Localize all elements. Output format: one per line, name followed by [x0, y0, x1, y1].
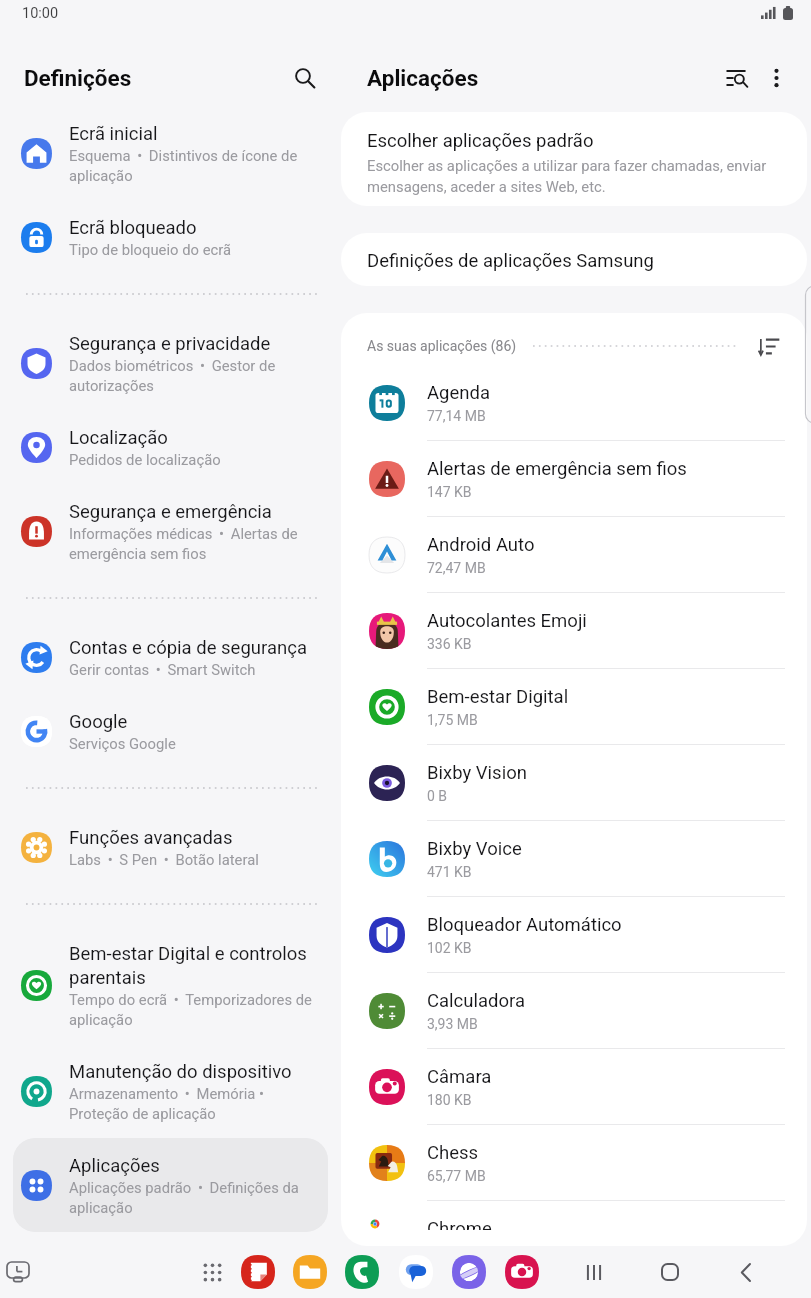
- button[interactable]: Funções avançadas: [13, 810, 328, 884]
- staticText: 10:00: [22, 5, 59, 22]
- staticText: Aplicações: [367, 65, 479, 91]
- button[interactable]: Messages: [390, 1246, 442, 1298]
- staticText: Labs • S Pen • Botão lateral: [69, 851, 259, 868]
- staticText: 102 KB: [427, 940, 472, 956]
- button[interactable]: Sort: [753, 331, 785, 361]
- staticText: Aplicações padrão • Definições da aplica…: [69, 1179, 299, 1216]
- button[interactable]: Segurança e emergência: [13, 484, 328, 578]
- button[interactable]: Contas e cópia de segurança: [13, 620, 328, 694]
- staticText: 77,14 MB: [427, 408, 486, 424]
- button[interactable]: DeX mode: [3, 1246, 33, 1298]
- button[interactable]: Manutenção do dispositivo: [13, 1044, 328, 1138]
- staticText: Bixby Voice: [427, 838, 522, 860]
- button[interactable]: Bem-estar Digital e controlos parentais: [13, 926, 328, 1044]
- button[interactable]: Alertas de emergência sem fios: [341, 441, 807, 516]
- staticText: Pedidos de localização: [69, 451, 221, 468]
- staticText: Gerir contas • Smart Switch: [69, 661, 256, 678]
- staticText: Escolher as aplicações a utilizar para f…: [367, 157, 767, 196]
- button[interactable]: Phone: [336, 1246, 388, 1298]
- staticText: Bem-estar Digital e controlos parentais: [69, 943, 307, 989]
- staticText: Alertas de emergência sem fios: [427, 458, 687, 480]
- staticText: Serviços Google: [69, 735, 176, 752]
- staticText: Localização: [69, 427, 168, 449]
- staticText: 0 B: [427, 788, 448, 804]
- staticText: Definições: [24, 65, 132, 91]
- staticText: Definições de aplicações Samsung: [367, 250, 654, 272]
- staticText: Bem-estar Digital: [427, 686, 569, 708]
- button[interactable]: Ecrã bloqueado: [13, 200, 328, 274]
- staticText: Ecrã bloqueado: [69, 217, 197, 239]
- staticText: Autocolantes Emoji: [427, 610, 587, 632]
- staticText: Dados biométricos • Gestor de autorizaçõ…: [69, 357, 276, 394]
- button[interactable]: Escolher aplicações padrão: [341, 112, 807, 206]
- staticText: Agenda: [427, 382, 490, 404]
- staticText: Bixby Vision: [427, 762, 527, 784]
- button[interactable]: Ecrã inicial: [13, 106, 328, 200]
- staticText: Funções avançadas: [69, 827, 233, 849]
- button[interactable]: Search apps: [715, 56, 759, 100]
- button[interactable]: Bem-estar Digital: [341, 669, 807, 744]
- staticText: Câmara: [427, 1066, 492, 1088]
- staticText: 336 KB: [427, 636, 472, 652]
- button[interactable]: Android Auto: [341, 517, 807, 592]
- staticText: Chess: [427, 1142, 479, 1164]
- staticText: Aplicações: [69, 1155, 160, 1177]
- button[interactable]: More options: [754, 56, 798, 100]
- staticText: Google: [69, 711, 128, 733]
- staticText: 471 KB: [427, 864, 472, 880]
- button[interactable]: My Files: [284, 1246, 336, 1298]
- staticText: Tempo do ecrã • Temporizadores de aplica…: [69, 991, 312, 1028]
- staticText: Segurança e privacidade: [69, 333, 271, 355]
- button[interactable]: Localização: [13, 410, 328, 484]
- button[interactable]: Autocolantes Emoji: [341, 593, 807, 668]
- staticText: Escolher aplicações padrão: [367, 130, 594, 152]
- button[interactable]: Internet: [443, 1246, 495, 1298]
- staticText: Chrome: [427, 1218, 492, 1230]
- staticText: Contas e cópia de segurança: [69, 637, 307, 659]
- staticText: Segurança e emergência: [69, 501, 272, 523]
- staticText: Bloqueador Automático: [427, 914, 622, 936]
- button[interactable]: Aplicações: [13, 1138, 328, 1232]
- button[interactable]: Definições de aplicações Samsung: [341, 233, 807, 286]
- button[interactable]: Agenda: [341, 365, 807, 440]
- staticText: Manutenção do dispositivo: [69, 1061, 292, 1083]
- staticText: Calculadora: [427, 990, 526, 1012]
- button[interactable]: Samsung Notes: [232, 1246, 284, 1298]
- button[interactable]: Calculadora: [341, 973, 807, 1048]
- button[interactable]: Bixby Voice: [341, 821, 807, 896]
- staticText: 65,77 MB: [427, 1168, 486, 1184]
- staticText: Tipo de bloqueio do ecrã: [69, 241, 231, 258]
- staticText: Android Auto: [427, 534, 535, 556]
- staticText: Esquema • Distintivos de ícone de aplica…: [69, 147, 298, 184]
- staticText: 147 KB: [427, 484, 472, 500]
- button[interactable]: Search: [283, 56, 327, 100]
- button[interactable]: All apps: [190, 1246, 234, 1298]
- staticText: 72,47 MB: [427, 560, 486, 576]
- button[interactable]: Home: [640, 1246, 700, 1298]
- staticText: 180 KB: [427, 1092, 472, 1108]
- button[interactable]: Câmara: [341, 1049, 807, 1124]
- button[interactable]: Camera: [496, 1246, 548, 1298]
- staticText: Informações médicas • Alertas de emergên…: [69, 525, 298, 562]
- staticText: 3,93 MB: [427, 1016, 478, 1032]
- button[interactable]: Back: [716, 1246, 776, 1298]
- staticText: Armazenamento • Memória • Proteção de ap…: [69, 1085, 264, 1122]
- staticText: Ecrã inicial: [69, 123, 158, 145]
- button[interactable]: Bloqueador Automático: [341, 897, 807, 972]
- button[interactable]: Recents: [564, 1246, 624, 1298]
- button[interactable]: Bixby Vision: [341, 745, 807, 820]
- staticText: 1,75 MB: [427, 712, 478, 728]
- button[interactable]: Chrome: [341, 1201, 807, 1246]
- staticText: As suas aplicações (86): [367, 338, 517, 354]
- button[interactable]: Segurança e privacidade: [13, 316, 328, 410]
- button[interactable]: Google: [13, 694, 328, 768]
- button[interactable]: Chess: [341, 1125, 807, 1200]
